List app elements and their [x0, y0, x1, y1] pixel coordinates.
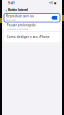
- staticText: 9:41: [8, 1, 15, 5]
- button[interactable]: Como desligar o seu iPhone: [4, 31, 60, 42]
- staticText: Reproduzir som ao: [6, 14, 34, 18]
- button[interactable]: Pausar prolongado: [4, 22, 60, 31]
- staticText: Botão lateral: [8, 7, 28, 12]
- staticText: Pausar prolongado: [7, 23, 36, 27]
- staticText: Como desligar o seu iPhone: [7, 35, 50, 39]
- staticText: ‹: [5, 6, 7, 14]
- button[interactable]: Back: [5, 7, 7, 12]
- staticText: pressionar: [6, 18, 16, 21]
- button[interactable]: Reproduzir som ao: [4, 13, 60, 22]
- staticText: •ıll ◼: [49, 1, 56, 5]
- staticText: Mantenha pressionado: [7, 27, 28, 30]
